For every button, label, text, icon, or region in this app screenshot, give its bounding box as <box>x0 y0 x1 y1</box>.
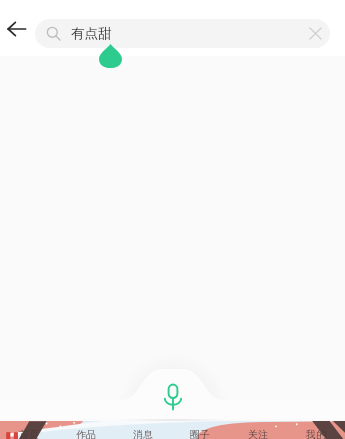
button[interactable]: 我的 <box>287 428 345 439</box>
button[interactable]: Clear <box>301 19 330 48</box>
button[interactable]: 关注 <box>229 428 287 439</box>
staticText: 关注 <box>248 428 268 439</box>
button[interactable]: 有点甜 <box>35 19 330 48</box>
button[interactable]: 消息 <box>114 428 171 439</box>
staticText: 我的 <box>306 428 326 439</box>
button[interactable]: Voice search <box>151 375 195 419</box>
button[interactable]: 圈子 <box>171 428 229 439</box>
staticText: 有点甜 <box>71 25 112 42</box>
button[interactable]: 首页 <box>0 428 57 439</box>
staticText: 圈子 <box>190 428 210 439</box>
button[interactable]: Back <box>0 10 34 48</box>
staticText: 消息 <box>133 428 153 439</box>
staticText: 作品 <box>76 428 96 439</box>
staticText: 首页 <box>19 428 39 439</box>
button[interactable]: 作品 <box>57 428 114 439</box>
